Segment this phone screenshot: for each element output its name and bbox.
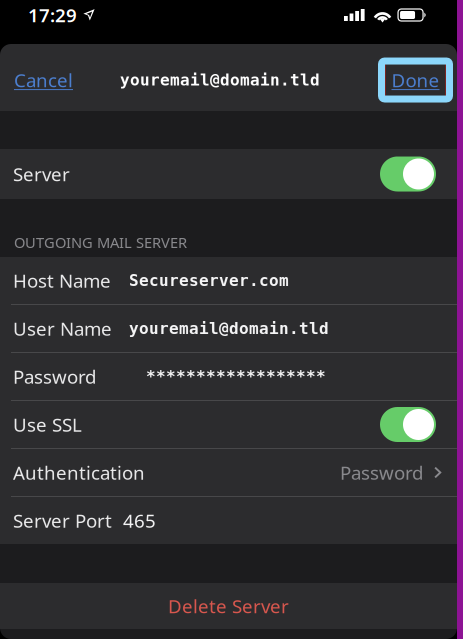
staticText: Use SSL: [13, 412, 82, 437]
button[interactable]: User Name: [0, 305, 457, 352]
button[interactable]: Server Port: [0, 497, 457, 544]
staticText: Done: [391, 68, 439, 92]
staticText: Delete Server: [168, 594, 289, 618]
staticText: Server: [13, 162, 70, 186]
staticText: Host Name: [13, 268, 111, 293]
button[interactable]: Done: [378, 57, 453, 102]
staticText: Password: [340, 460, 423, 485]
staticText: Password: [13, 364, 96, 389]
staticText: ******************: [146, 367, 326, 386]
button[interactable]: Authentication: [0, 449, 457, 496]
staticText: 17:29: [28, 3, 77, 27]
staticText: User Name: [13, 316, 112, 341]
staticText: Secureserver.com: [129, 271, 289, 290]
button[interactable]: Use SSL: [0, 401, 457, 448]
button[interactable]: Password: [0, 353, 457, 400]
staticText: OUTGOING MAIL SERVER: [14, 232, 187, 252]
button[interactable]: Server: [0, 149, 457, 199]
staticText: youremail@domain.tld: [129, 319, 329, 338]
button[interactable]: Cancel: [12, 59, 75, 101]
staticText: youremail@domain.tld: [120, 71, 320, 89]
button[interactable]: Delete Server: [0, 583, 457, 629]
staticText: Cancel: [14, 68, 73, 92]
staticText: Authentication: [13, 460, 145, 485]
staticText: 465: [123, 508, 156, 533]
button[interactable]: Host Name: [0, 257, 457, 304]
staticText: Server Port: [13, 508, 112, 533]
